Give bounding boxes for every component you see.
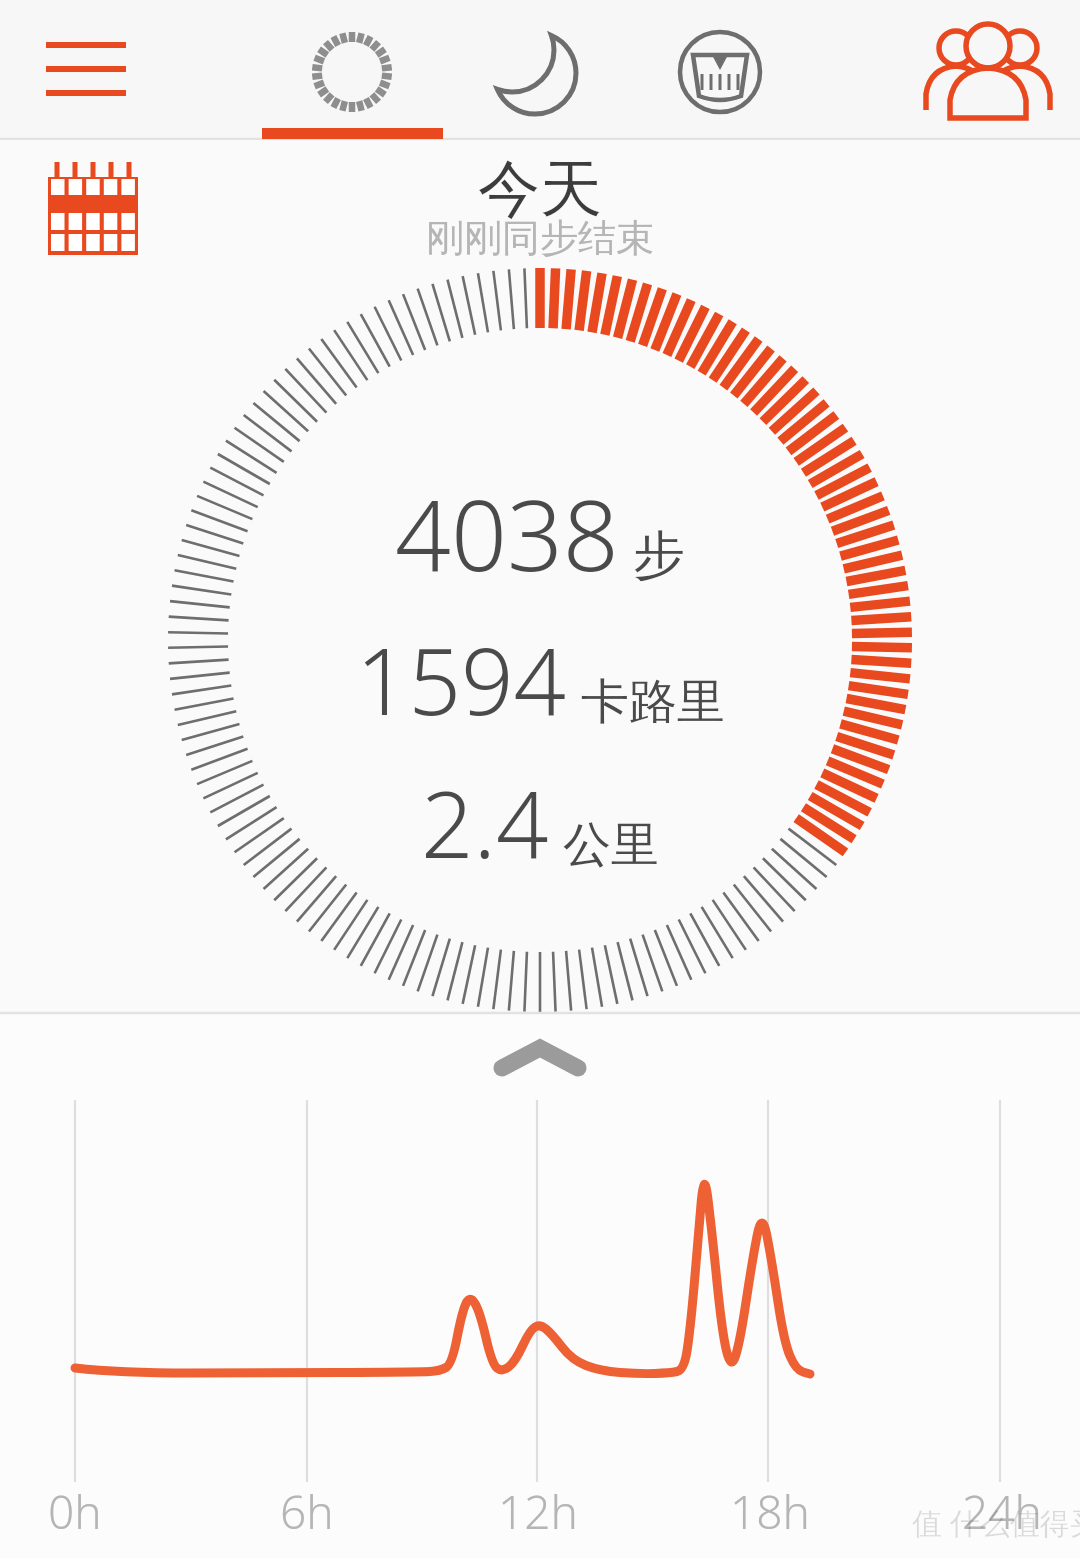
button[interactable]: Steps — [282, 6, 422, 140]
staticText: 刚刚同步结束 — [426, 214, 654, 262]
staticText: 24h — [962, 1480, 1042, 1543]
staticText: 1594 — [356, 617, 567, 742]
staticText: 公里 — [563, 815, 659, 875]
button[interactable]: Menu — [16, 16, 126, 124]
button[interactable]: Friends — [908, 6, 1068, 140]
staticText: 0h — [48, 1480, 102, 1543]
staticText: 4038 — [395, 466, 619, 599]
button[interactable]: Calendar — [36, 152, 150, 252]
staticText: 2.4 — [421, 760, 549, 885]
staticText: 卡路里 — [581, 672, 725, 732]
button[interactable]: Weight — [650, 6, 790, 140]
staticText: 值 什么值得买 — [912, 1502, 1080, 1543]
staticText: 18h — [730, 1480, 810, 1543]
staticText: 12h — [498, 1480, 578, 1543]
staticText: 步 — [633, 523, 685, 589]
staticText: 今天 — [478, 150, 602, 228]
button[interactable]: Expand — [460, 1026, 620, 1096]
staticText: 6h — [280, 1480, 334, 1543]
button[interactable]: Sleep — [466, 6, 606, 140]
